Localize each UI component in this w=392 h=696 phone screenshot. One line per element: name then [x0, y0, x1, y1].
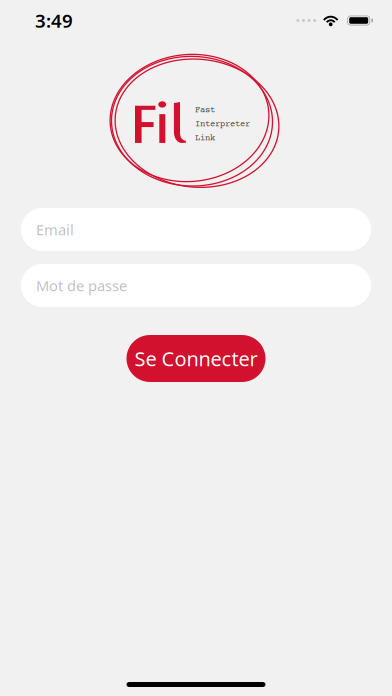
- button[interactable]: Se Connecter: [126, 335, 265, 382]
- staticText: Fast: [195, 105, 215, 115]
- staticText: Interpreter: [195, 119, 250, 129]
- staticText: 3:49: [35, 8, 73, 33]
- staticText: Link: [195, 133, 215, 143]
- staticText: Mot de passe: [36, 276, 127, 295]
- button[interactable]: Email: [0, 208, 392, 251]
- button[interactable]: Mot de passe: [0, 264, 392, 307]
- staticText: Se Connecter: [134, 345, 257, 372]
- staticText: Email: [36, 220, 74, 239]
